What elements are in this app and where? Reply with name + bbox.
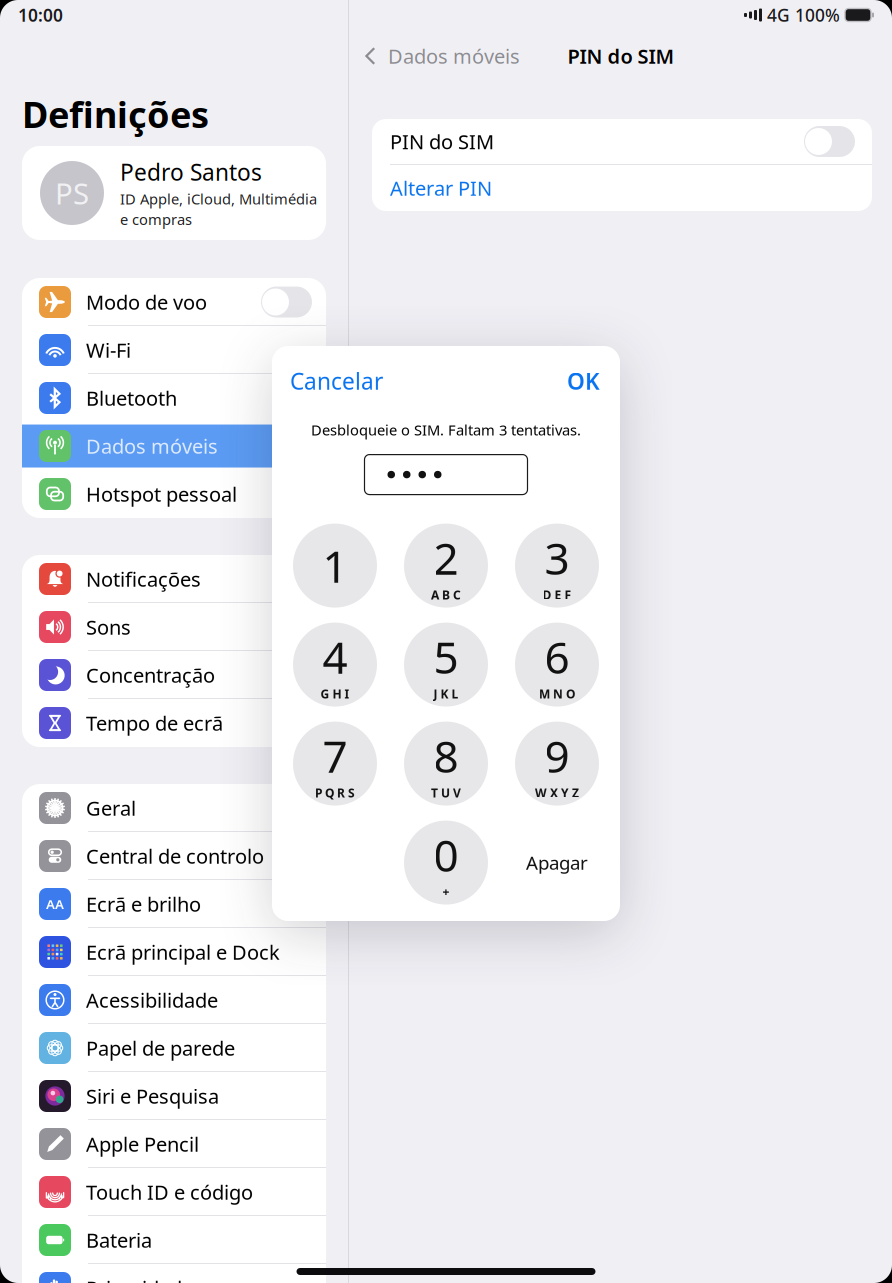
staticText: P Q R S: [315, 785, 355, 801]
staticText: +: [442, 884, 449, 900]
staticText: Ecrã principal e Dock: [86, 939, 280, 965]
button[interactable]: AA: [22, 880, 326, 928]
staticText: Hotspot pessoal: [86, 481, 237, 507]
button[interactable]: Concentração: [22, 651, 326, 699]
staticText: T U V: [431, 785, 461, 801]
staticText: 4: [322, 627, 347, 686]
button[interactable]: 8: [404, 722, 488, 806]
button[interactable]: 4: [293, 623, 377, 707]
staticText: Tempo de ecrã: [86, 710, 223, 736]
staticText: 7: [322, 726, 347, 785]
staticText: 10:00: [18, 3, 63, 26]
button[interactable]: Apple Pencil: [22, 1120, 326, 1168]
button[interactable]: Sons: [22, 603, 326, 651]
button[interactable]: 9: [515, 722, 599, 806]
staticText: J K L: [433, 686, 458, 702]
button[interactable]: Bateria: [22, 1216, 326, 1264]
staticText: Dados móveis: [388, 43, 520, 69]
staticText: Pedro Santos: [120, 157, 262, 187]
button[interactable]: Acessibilidade: [22, 976, 326, 1024]
staticText: Ecrã e brilho: [86, 891, 201, 917]
staticText: M N O: [539, 686, 575, 702]
button[interactable]: 7: [293, 722, 377, 806]
staticText: Cancelar: [290, 366, 383, 396]
staticText: Papel de parede: [86, 1035, 235, 1061]
staticText: Dados móveis: [86, 433, 218, 459]
button[interactable]: 1: [293, 524, 377, 608]
button[interactable]: 0: [404, 821, 488, 905]
button[interactable]: Siri e Pesquisa: [22, 1072, 326, 1120]
staticText: Desbloqueie o SIM. Faltam 3 tentativas.: [311, 420, 581, 440]
button[interactable]: Ecrã principal e Dock: [22, 928, 326, 976]
staticText: Privacidade: [86, 1275, 193, 1283]
staticText: 5: [433, 627, 458, 686]
button[interactable]: Alterar PIN: [372, 165, 872, 211]
staticText: Touch ID e código: [86, 1179, 253, 1205]
staticText: e compras: [120, 210, 192, 229]
button[interactable]: Privacidade: [22, 1264, 326, 1283]
staticText: Definições: [22, 90, 209, 138]
button[interactable]: 2: [404, 524, 488, 608]
staticText: Siri e Pesquisa: [86, 1083, 219, 1109]
staticText: 8: [433, 726, 458, 785]
staticText: PIN do SIM: [567, 43, 674, 69]
staticText: Bateria: [86, 1227, 152, 1253]
staticText: PS: [55, 173, 89, 212]
staticText: 9: [544, 726, 569, 785]
staticText: D E F: [542, 587, 571, 603]
staticText: AA: [46, 895, 64, 913]
button[interactable]: Papel de parede: [22, 1024, 326, 1072]
staticText: Acessibilidade: [86, 987, 218, 1013]
staticText: Modo de voo: [86, 289, 207, 315]
staticText: Apagar: [526, 850, 588, 875]
staticText: Notificações: [86, 566, 201, 592]
staticText: Sons: [86, 614, 131, 640]
staticText: 0: [433, 825, 458, 884]
button[interactable]: 3: [515, 524, 599, 608]
staticText: Wi-Fi: [86, 337, 131, 363]
button[interactable]: Modo de voo: [22, 278, 326, 326]
staticText: Central de controlo: [86, 843, 264, 869]
staticText: G H I: [320, 686, 349, 702]
button[interactable]: Central de controlo: [22, 832, 326, 880]
button[interactable]: 6: [515, 623, 599, 707]
staticText: Alterar PIN: [390, 175, 492, 201]
staticText: PIN do SIM: [390, 128, 494, 155]
button[interactable]: Hotspot pessoal: [22, 470, 326, 518]
button[interactable]: 5: [404, 623, 488, 707]
staticText: 3: [544, 528, 569, 587]
staticText: 6: [544, 627, 569, 686]
button[interactable]: Dados móveis: [349, 36, 520, 76]
staticText: Concentração: [86, 662, 215, 688]
button[interactable]: Tempo de ecrã: [22, 699, 326, 747]
staticText: 1: [322, 536, 347, 595]
staticText: 4G 100%: [767, 3, 840, 26]
staticText: Bluetooth: [86, 385, 177, 411]
button[interactable]: Geral: [22, 784, 326, 832]
staticText: Geral: [86, 795, 136, 821]
staticText: W X Y Z: [535, 785, 579, 801]
button[interactable]: Dados móveis: [22, 422, 326, 470]
button[interactable]: Apagar: [515, 821, 599, 905]
button[interactable]: Wi-Fi: [22, 326, 326, 374]
button[interactable]: Notificações: [22, 555, 326, 603]
button[interactable]: Cancelar: [290, 366, 383, 396]
staticText: OK: [567, 366, 600, 396]
button[interactable]: Touch ID e código: [22, 1168, 326, 1216]
button[interactable]: OK: [567, 366, 600, 396]
staticText: Apple Pencil: [86, 1131, 199, 1157]
staticText: 2: [433, 528, 458, 587]
button[interactable]: PS: [22, 146, 326, 240]
staticText: A B C: [431, 587, 461, 603]
staticText: ID Apple, iCloud, Multimédia: [120, 189, 317, 209]
button[interactable]: Bluetooth: [22, 374, 326, 422]
